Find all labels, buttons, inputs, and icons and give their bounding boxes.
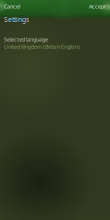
button[interactable]: Accept bbox=[86, 0, 110, 13]
button[interactable]: Cancel bbox=[0, 0, 23, 13]
staticText: Cancel bbox=[4, 3, 20, 10]
staticText: Settings bbox=[4, 15, 29, 24]
staticText: Accept bbox=[89, 3, 106, 10]
staticText: United Kingdom (British English) bbox=[4, 43, 80, 50]
staticText: Selected language bbox=[4, 36, 48, 43]
